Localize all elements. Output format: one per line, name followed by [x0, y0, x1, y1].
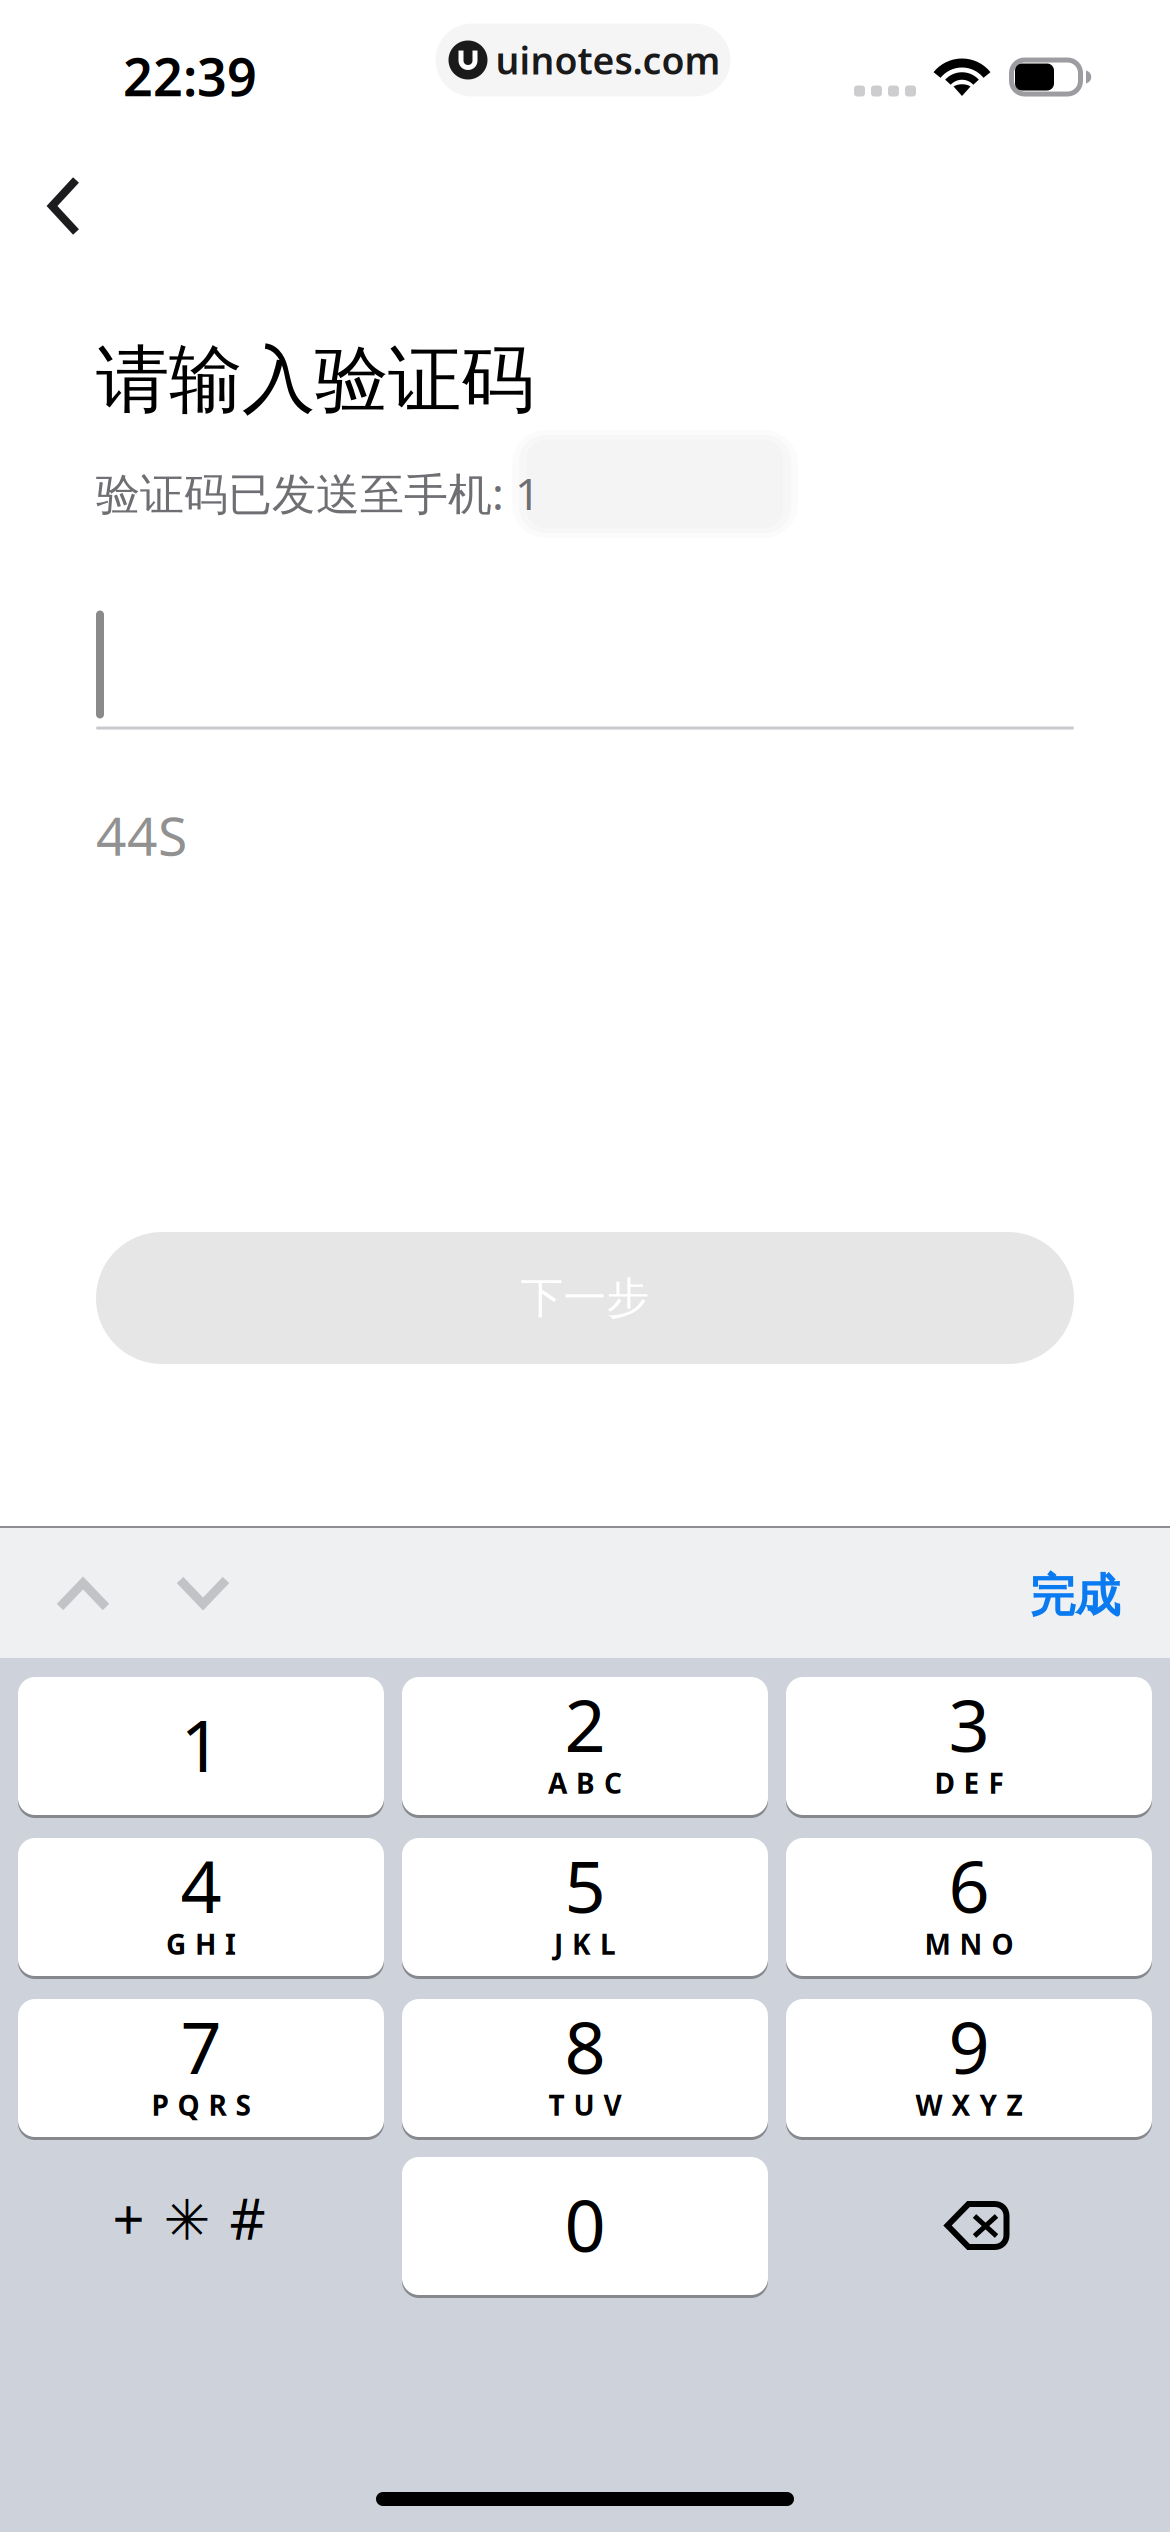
staticText: 0: [564, 2176, 605, 2272]
button[interactable]: Next field: [148, 1537, 258, 1647]
staticText: TUV: [548, 2086, 621, 2124]
staticText: uinotes.com: [495, 35, 720, 85]
staticText: 5: [564, 1837, 605, 1933]
staticText: 8: [564, 1998, 605, 2094]
staticText: DEF: [934, 1764, 1003, 1802]
button[interactable]: Back: [0, 142, 128, 270]
staticText: MNO: [924, 1925, 1013, 1963]
staticText: PQRS: [151, 2086, 250, 2124]
staticText: 1: [180, 1696, 221, 1792]
staticText: 44S: [96, 800, 187, 870]
button[interactable]: 1: [18, 1675, 384, 1816]
button[interactable]: 7: [18, 1997, 384, 2138]
staticText: 22:39: [123, 41, 257, 111]
staticText: 7: [180, 1998, 221, 2094]
staticText: ABC: [548, 1764, 622, 1802]
staticText: 4: [180, 1837, 221, 1933]
button[interactable]: Symbols: [18, 2157, 384, 2295]
staticText: 2: [564, 1676, 605, 1772]
staticText: JKL: [554, 1925, 616, 1963]
button[interactable]: Verification code: [96, 610, 1074, 729]
button[interactable]: 4: [18, 1836, 384, 1977]
staticText: 完成: [1030, 1568, 1120, 1624]
staticText: GHI: [166, 1925, 236, 1963]
staticText: 请输入验证码: [96, 335, 534, 425]
button[interactable]: 完成: [1000, 1546, 1150, 1646]
button[interactable]: 下一步: [96, 1232, 1074, 1364]
button[interactable]: 8: [402, 1997, 768, 2138]
staticText: 9: [948, 1998, 989, 2094]
button[interactable]: 3: [786, 1675, 1152, 1816]
staticText: 验证码已发送至手机: 1: [96, 464, 540, 522]
staticText: 3: [948, 1676, 989, 1772]
button[interactable]: Previous field: [28, 1540, 138, 1650]
button[interactable]: 0: [402, 2155, 768, 2296]
button[interactable]: 9: [786, 1997, 1152, 2138]
button[interactable]: 6: [786, 1836, 1152, 1977]
staticText: + ✳ #: [112, 2181, 265, 2255]
staticText: 下一步: [520, 1272, 649, 1324]
staticText: WXYZ: [915, 2086, 1022, 2124]
button[interactable]: 5: [402, 1836, 768, 1977]
button[interactable]: 2: [402, 1675, 768, 1816]
button[interactable]: Delete: [786, 2157, 1152, 2295]
staticText: 6: [948, 1837, 989, 1933]
